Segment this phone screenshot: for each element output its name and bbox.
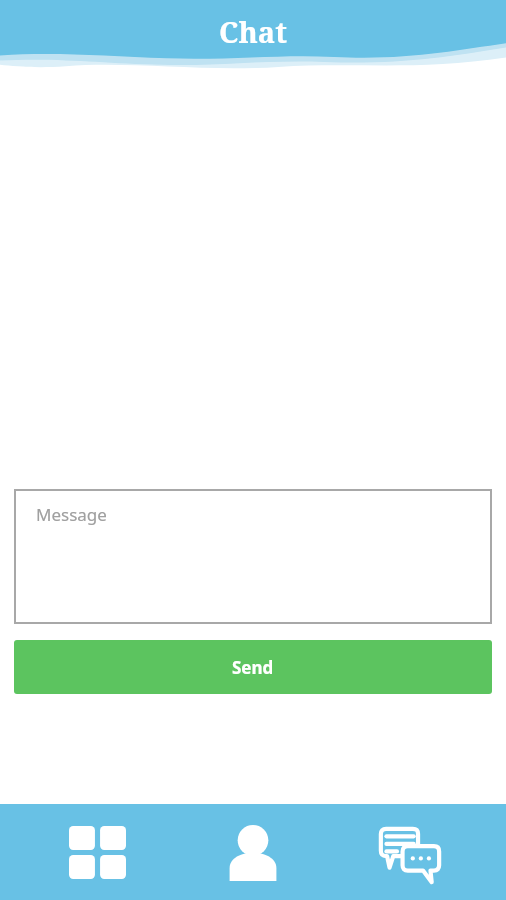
staticText: Message: [36, 503, 107, 526]
staticText: Send: [232, 656, 274, 679]
button[interactable]: Chat: [350, 804, 470, 900]
button[interactable]: Profile: [193, 804, 313, 900]
button[interactable]: Dashboard: [37, 804, 157, 900]
button[interactable]: Send: [14, 640, 492, 694]
button[interactable]: Message: [14, 489, 492, 624]
staticText: Chat: [219, 12, 287, 51]
